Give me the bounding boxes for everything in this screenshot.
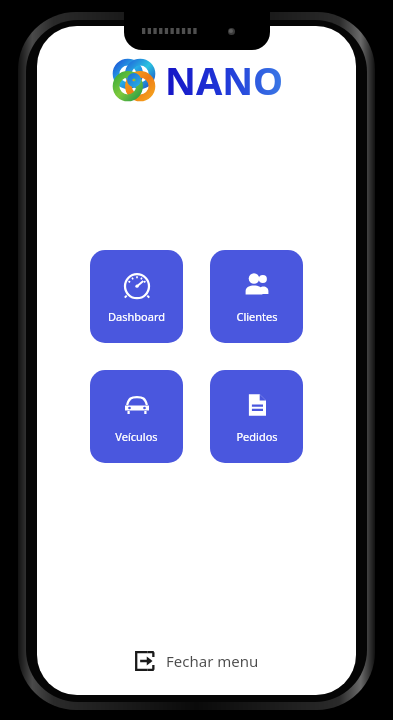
staticText: NANO (165, 54, 284, 106)
button[interactable]: Clientes (210, 250, 303, 343)
button[interactable]: Pedidos (210, 370, 303, 463)
staticText: Clientes (236, 309, 278, 324)
staticText: Pedidos (236, 429, 278, 444)
staticText: Fechar menu (166, 651, 259, 671)
button[interactable]: Dashboard (90, 250, 183, 343)
button[interactable]: Veículos (90, 370, 183, 463)
staticText: Veículos (115, 429, 158, 444)
button[interactable]: Fechar menu (124, 644, 269, 678)
staticText: Dashboard (108, 309, 165, 324)
